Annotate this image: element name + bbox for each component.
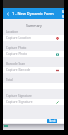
staticText: Total — [6, 78, 13, 82]
button[interactable]: SAVE — [62, 8, 64, 19]
staticText: Barcode Scan — [6, 62, 26, 66]
staticText: SAVE — [62, 9, 64, 20]
other: Capture barcode — [56, 69, 59, 72]
button[interactable]: Barcode Scan — [3, 61, 64, 77]
button[interactable]: Location — [3, 29, 64, 45]
other: Capture photo — [56, 53, 59, 56]
staticText: Capture Photo — [6, 46, 27, 50]
other: Capture signature — [56, 101, 59, 104]
other: Capture location — [56, 37, 59, 40]
staticText: Next — [49, 119, 56, 123]
button[interactable]: Total — [3, 77, 64, 93]
staticText: Location — [6, 30, 19, 34]
staticText: 1 - New Dynamic Form — [12, 11, 54, 16]
staticText: Summary — [26, 23, 42, 28]
button[interactable]: Back — [3, 8, 12, 19]
staticText: Capture Signature — [6, 100, 33, 104]
staticText: Capture Location — [6, 36, 31, 40]
button[interactable]: Capture Photo — [3, 45, 64, 61]
button[interactable]: Next — [47, 119, 57, 123]
button[interactable]: Capture Signature — [3, 93, 64, 109]
staticText: Capture Photo — [6, 52, 28, 56]
staticText: Capture Signature — [6, 94, 32, 98]
staticText: Capture Barcode — [6, 68, 31, 72]
